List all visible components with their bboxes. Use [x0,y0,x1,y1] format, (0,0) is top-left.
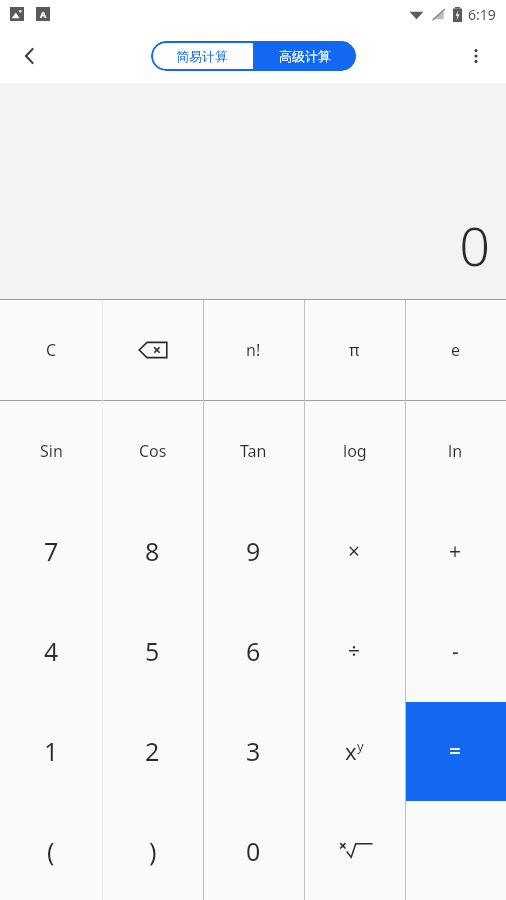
button[interactable]: 简易计算 [151,41,253,71]
button[interactable]: Tan [203,401,304,501]
button[interactable]: + [405,501,506,601]
staticText: 简易计算 [176,48,228,64]
staticText: Tan [240,440,267,462]
staticText: = [449,737,462,766]
button[interactable]: log [304,401,405,501]
button[interactable]: 1 [0,701,102,801]
button[interactable]: Sin [0,401,102,501]
staticText: 0 [246,834,261,868]
button[interactable]: Cos [102,401,203,501]
staticText: ( [47,834,55,868]
button[interactable]: 7 [0,501,102,601]
button[interactable]: ) [102,801,203,900]
staticText: ln [448,440,463,462]
staticText: 高级计算 [279,48,331,64]
staticText: Sin [40,440,63,462]
button[interactable]: = [405,702,506,801]
staticText: log [343,440,367,462]
button[interactable]: 4 [0,601,102,701]
button[interactable]: Back [8,34,52,78]
button[interactable]: 5 [102,601,203,701]
button[interactable]: Backspace [102,300,203,400]
button[interactable]: 6 [203,601,304,701]
button[interactable]: 0 [203,801,304,900]
button[interactable] [405,801,506,900]
button[interactable]: 9 [203,501,304,601]
button[interactable]: ( [0,801,102,900]
staticText: x [345,736,357,766]
staticText: × [348,537,361,566]
staticText: ÷ [348,637,361,666]
button[interactable]: n! [203,300,304,400]
staticText: e [451,339,461,361]
staticText: 0 [459,208,490,282]
staticText: 1 [44,734,59,768]
staticText: 2 [145,734,160,768]
staticText: 5 [145,634,160,668]
button[interactable]: C [0,300,102,400]
staticText: 8 [145,534,160,568]
button[interactable]: ln [405,401,506,501]
button[interactable]: 8 [102,501,203,601]
staticText: 6 [246,634,261,668]
button[interactable]: x [304,701,405,801]
button[interactable]: - [405,601,506,701]
staticText: 3 [246,734,261,768]
button[interactable]: More options [454,34,498,78]
staticText: π [349,339,360,361]
button[interactable]: 3 [203,701,304,801]
staticText: A [40,8,47,20]
staticText: 4 [44,634,59,668]
staticText: y [357,737,364,755]
staticText: 7 [44,534,59,568]
staticText: 6:19 [468,5,496,24]
button[interactable]: × [304,501,405,601]
button[interactable]: 高级计算 [253,41,356,71]
button[interactable]: Root [304,801,405,900]
staticText: C [46,339,57,361]
staticText: Cos [139,440,167,462]
staticText: + [449,537,462,566]
button[interactable]: 2 [102,701,203,801]
staticText: - [452,637,459,666]
staticText: ) [149,834,157,868]
button[interactable]: π [304,300,405,400]
button[interactable]: ÷ [304,601,405,701]
button[interactable]: e [405,300,506,400]
staticText: 9 [246,534,261,568]
staticText: n! [246,339,261,361]
